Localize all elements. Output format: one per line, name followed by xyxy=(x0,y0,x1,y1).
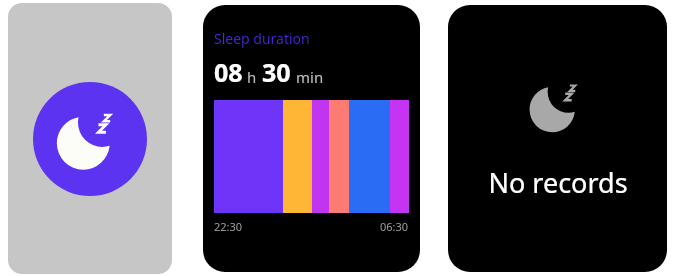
button[interactable]: Sleep duration xyxy=(203,5,420,272)
button[interactable]: No records xyxy=(448,5,667,272)
staticText: 08 xyxy=(214,55,243,89)
staticText: 30 xyxy=(262,55,291,89)
staticText: 22:30 xyxy=(214,219,243,234)
button[interactable]: Sleep app icon xyxy=(8,3,172,274)
staticText: No records xyxy=(488,164,628,201)
staticText: 06:30 xyxy=(380,219,409,234)
staticText: min xyxy=(296,67,324,87)
button[interactable]: Sleep stages chart xyxy=(214,100,409,213)
staticText: Sleep duration xyxy=(214,29,310,48)
staticText: h xyxy=(247,67,257,87)
